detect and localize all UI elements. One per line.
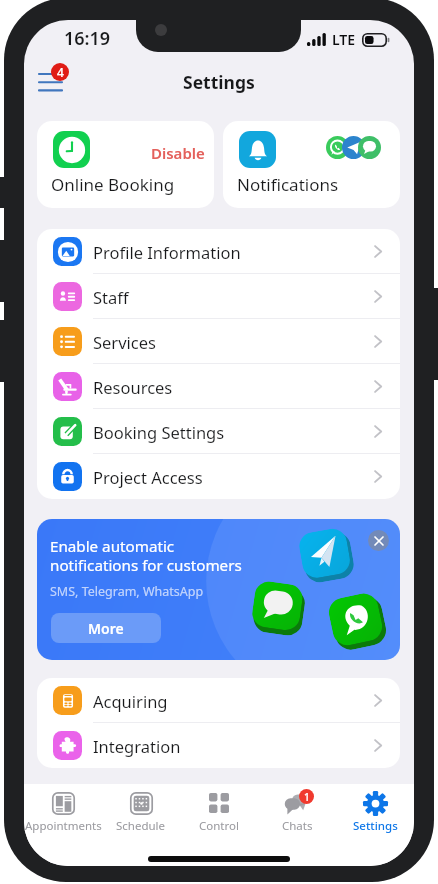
staticText: 4	[57, 64, 64, 80]
staticText: Acquiring	[93, 690, 168, 712]
staticText: Schedule	[116, 818, 166, 833]
staticText: LTE	[332, 30, 356, 49]
staticText: Project Access	[93, 466, 203, 488]
staticText: Settings	[353, 818, 398, 833]
button[interactable]: Settings	[336, 784, 414, 833]
staticText: Control	[199, 818, 239, 833]
button[interactable]: Menu	[30, 60, 82, 102]
button[interactable]: Integration	[37, 723, 400, 768]
button[interactable]: Resources	[37, 364, 400, 409]
button[interactable]: Close	[368, 530, 389, 551]
button[interactable]: Profile Information	[37, 229, 400, 274]
staticText: Appointments	[25, 818, 102, 833]
staticText: Settings	[183, 70, 255, 94]
button[interactable]: Schedule	[102, 784, 180, 833]
button[interactable]: More	[51, 613, 161, 643]
button[interactable]: Booking Settings	[37, 409, 400, 454]
button[interactable]: Enable automatic	[37, 519, 400, 660]
staticText: Booking Settings	[93, 421, 225, 443]
staticText: Resources	[93, 376, 173, 398]
button[interactable]: Control	[180, 784, 258, 833]
staticText: Disable	[151, 143, 205, 163]
staticText: Chats	[282, 818, 313, 833]
staticText: Notifications	[237, 173, 339, 196]
staticText: Profile Information	[93, 241, 241, 263]
button[interactable]: Notifications	[223, 121, 400, 208]
button[interactable]: Disable	[37, 121, 214, 208]
button[interactable]: Acquiring	[37, 678, 400, 723]
staticText: Enable automatic	[50, 536, 175, 557]
staticText: Services	[93, 331, 156, 353]
staticText: SMS, Telegram, WhatsApp	[50, 583, 204, 600]
button[interactable]: Project Access	[37, 454, 400, 499]
staticText: Online Booking	[51, 173, 175, 196]
staticText: More	[88, 619, 124, 638]
staticText: 1	[304, 790, 310, 804]
button[interactable]: Staff	[37, 274, 400, 319]
button[interactable]: Services	[37, 319, 400, 364]
staticText: Integration	[93, 735, 181, 757]
staticText: 16:19	[64, 26, 111, 51]
staticText: Staff	[93, 286, 129, 308]
staticText: notifications for customers	[50, 555, 242, 576]
button[interactable]: Appointments	[24, 784, 102, 833]
button[interactable]: 1	[258, 784, 336, 833]
